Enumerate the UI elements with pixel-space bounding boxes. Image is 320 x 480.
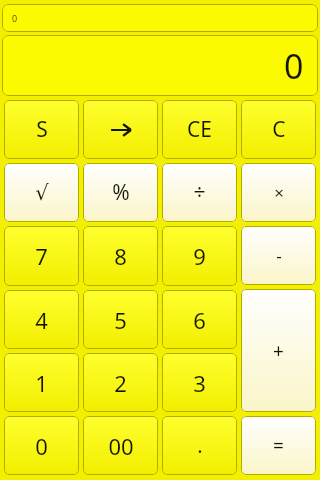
staticText: 5: [114, 305, 127, 335]
button[interactable]: 5: [83, 290, 158, 349]
button[interactable]: 7: [4, 226, 79, 286]
button[interactable]: 0: [2, 4, 318, 32]
button[interactable]: √: [4, 163, 79, 222]
staticText: 4: [35, 305, 48, 335]
button[interactable]: .: [162, 416, 237, 475]
button[interactable]: 0: [2, 35, 318, 96]
staticText: CE: [187, 115, 212, 144]
staticText: 0: [12, 12, 18, 24]
button[interactable]: +: [241, 289, 316, 412]
button[interactable]: 1: [4, 353, 79, 412]
staticText: √: [35, 181, 49, 205]
button[interactable]: ÷: [162, 163, 237, 222]
button[interactable]: 00: [83, 416, 158, 475]
staticText: 9: [193, 241, 206, 271]
button[interactable]: %: [83, 163, 158, 222]
staticText: 2: [114, 368, 127, 398]
button[interactable]: 9: [162, 226, 237, 286]
button[interactable]: C: [241, 100, 316, 159]
staticText: -: [276, 244, 282, 267]
button[interactable]: 4: [4, 290, 79, 349]
button[interactable]: 3: [162, 353, 237, 412]
button[interactable]: CE: [162, 100, 237, 159]
staticText: 00: [108, 431, 134, 461]
staticText: %: [112, 178, 130, 207]
staticText: ÷: [193, 178, 206, 207]
staticText: 8: [114, 241, 127, 271]
staticText: +: [273, 338, 284, 364]
button[interactable]: 6: [162, 290, 237, 349]
button[interactable]: =: [241, 416, 316, 475]
staticText: 7: [35, 241, 48, 271]
staticText: .: [197, 432, 203, 459]
staticText: ×: [274, 181, 284, 204]
staticText: 0: [35, 431, 48, 461]
staticText: 1: [35, 368, 48, 398]
staticText: C: [272, 115, 286, 144]
button[interactable]: -: [241, 226, 316, 285]
button[interactable]: ×: [241, 163, 316, 222]
staticText: =: [273, 433, 284, 459]
button[interactable]: 0: [4, 416, 79, 475]
staticText: S: [36, 115, 48, 144]
button[interactable]: Backspace: [83, 100, 158, 159]
staticText: 3: [193, 368, 206, 398]
button[interactable]: 8: [83, 226, 158, 286]
button[interactable]: S: [4, 100, 79, 159]
staticText: 6: [193, 305, 206, 335]
staticText: 0: [284, 43, 304, 89]
button[interactable]: 2: [83, 353, 158, 412]
